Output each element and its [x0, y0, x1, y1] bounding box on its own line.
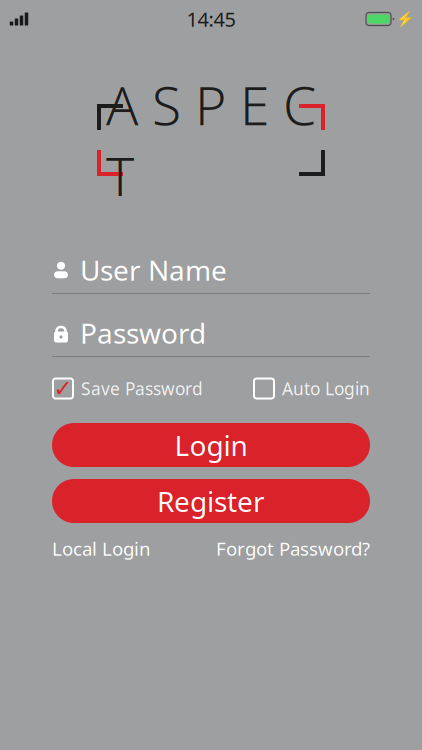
staticText: Forgot Password? — [216, 536, 370, 561]
staticText: Register — [157, 482, 265, 520]
staticText: 14:45 — [186, 6, 235, 32]
staticText: A S P E C T — [106, 69, 316, 211]
button[interactable]: ✓ — [52, 377, 203, 400]
button[interactable]: Register — [52, 479, 370, 523]
staticText: Auto Login — [282, 377, 370, 400]
button[interactable]: Login — [52, 423, 370, 467]
button[interactable]: Local Login — [52, 536, 151, 561]
staticText: User Name — [80, 251, 227, 289]
button[interactable]: Forgot Password? — [216, 536, 370, 561]
staticText: ✓ — [53, 376, 72, 401]
staticText: Login — [174, 426, 247, 464]
staticText: Save Password — [81, 377, 203, 400]
staticText: Local Login — [52, 536, 151, 561]
staticText: Password — [80, 314, 206, 352]
staticText: ⚡ — [396, 11, 414, 27]
button[interactable]: Auto Login — [253, 377, 370, 400]
